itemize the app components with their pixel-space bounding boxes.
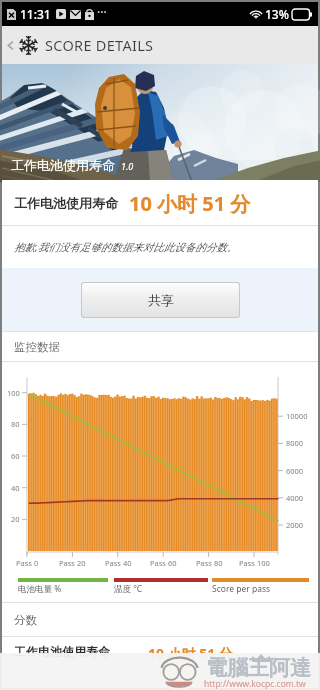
staticText: SCORE DETAILS <box>45 35 154 55</box>
staticText: 20 <box>11 514 20 524</box>
staticText: http://www.kocpc.com.tw <box>204 678 306 690</box>
staticText: Pass 80 <box>196 558 223 568</box>
staticText: 4000 <box>286 493 304 503</box>
button[interactable]: Back <box>2 26 18 64</box>
staticText: 温度 °C <box>114 583 143 595</box>
staticText: 40 <box>11 483 20 493</box>
staticText: 2000 <box>286 520 304 530</box>
staticText: Pass 40 <box>105 558 132 568</box>
staticText: 监控数据 <box>14 340 60 354</box>
staticText: 10000 <box>286 411 308 421</box>
staticText: 工作电池使用寿命 <box>14 644 110 659</box>
staticText: 1.0 <box>121 160 134 172</box>
staticText: ··· <box>97 4 107 20</box>
staticText: Pass 20 <box>59 558 86 568</box>
staticText: 100 <box>7 388 20 398</box>
staticText: 13% <box>265 6 289 22</box>
staticText: 电池电量 % <box>18 583 62 595</box>
staticText: Pass 100 <box>239 558 270 568</box>
staticText: 分数 <box>14 613 37 627</box>
staticText: 80 <box>11 419 20 429</box>
staticText: 共享 <box>148 292 174 308</box>
staticText: 8000 <box>286 438 304 448</box>
staticText: 抱歉,我们没有足够的数据来对比此设备的分数。 <box>14 240 238 254</box>
staticText: Score per pass <box>212 583 271 595</box>
staticText: Pass 0 <box>16 558 39 568</box>
staticText: 工作电池使用寿命 <box>14 195 118 211</box>
staticText: Pass 60 <box>150 558 177 568</box>
staticText: 工作电池使用寿命 <box>11 157 115 173</box>
staticText: 6000 <box>286 466 304 476</box>
button[interactable]: 共享 <box>82 283 239 317</box>
staticText: 10 小时 51 分 <box>129 190 251 217</box>
staticText: 10 小时 51 分 <box>148 644 233 663</box>
staticText: 11:31 <box>20 6 51 22</box>
staticText: 電腦王阿達 <box>206 655 311 681</box>
staticText: 60 <box>11 451 20 461</box>
